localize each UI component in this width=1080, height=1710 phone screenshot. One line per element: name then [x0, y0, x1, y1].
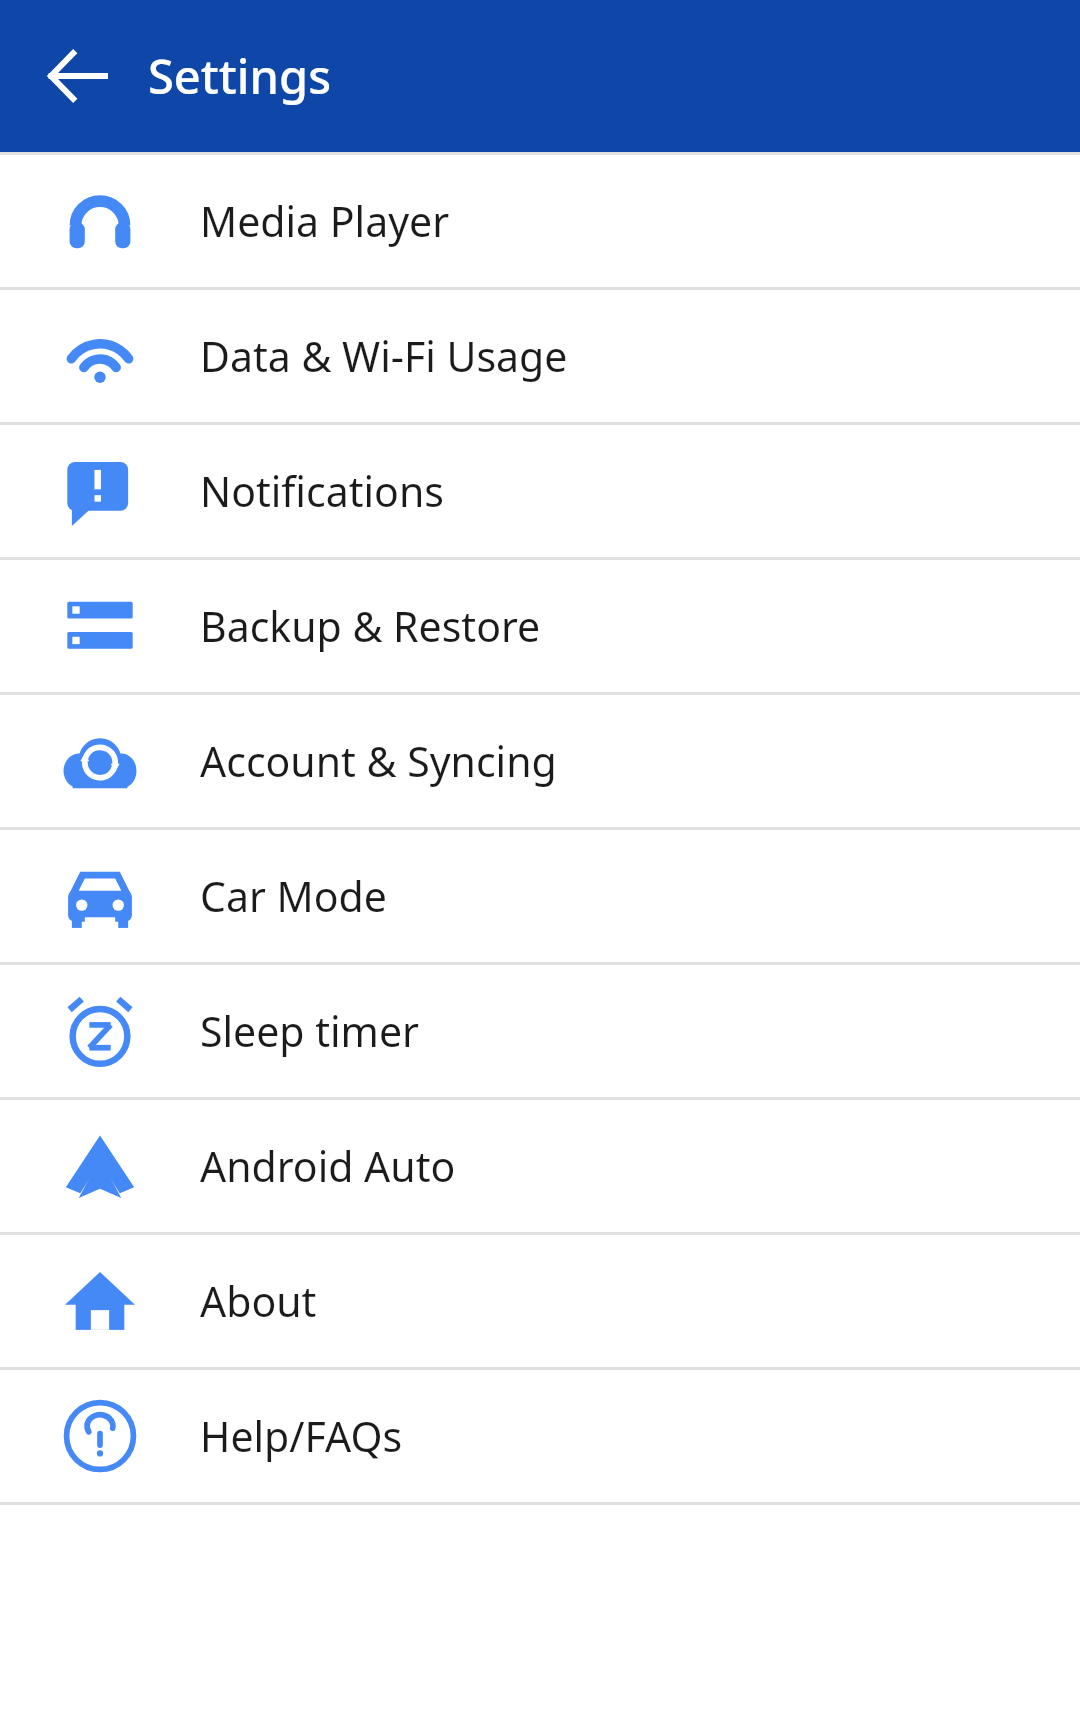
button[interactable]: Data & Wi-Fi Usage	[0, 290, 1080, 422]
button[interactable]: Account & Syncing	[0, 695, 1080, 827]
button[interactable]: Media Player	[0, 155, 1080, 287]
button[interactable]: Sleep timer	[0, 965, 1080, 1097]
staticText: Notifications	[200, 463, 444, 519]
button[interactable]: Car Mode	[0, 830, 1080, 962]
staticText: Android Auto	[200, 1138, 456, 1194]
staticText: Settings	[148, 44, 331, 108]
button[interactable]: Android Auto	[0, 1100, 1080, 1232]
staticText: Help/FAQs	[200, 1408, 403, 1464]
button[interactable]: About	[0, 1235, 1080, 1367]
staticText: Account & Syncing	[200, 733, 557, 789]
staticText: Data & Wi-Fi Usage	[200, 328, 568, 384]
button[interactable]: Backup & Restore	[0, 560, 1080, 692]
button[interactable]: Help/FAQs	[0, 1370, 1080, 1502]
staticText: Backup & Restore	[200, 598, 541, 654]
staticText: Sleep timer	[200, 1003, 419, 1059]
staticText: Car Mode	[200, 868, 387, 924]
staticText: Media Player	[200, 193, 450, 249]
button[interactable]: Back	[26, 24, 130, 128]
staticText: About	[200, 1273, 317, 1329]
button[interactable]: Notifications	[0, 425, 1080, 557]
